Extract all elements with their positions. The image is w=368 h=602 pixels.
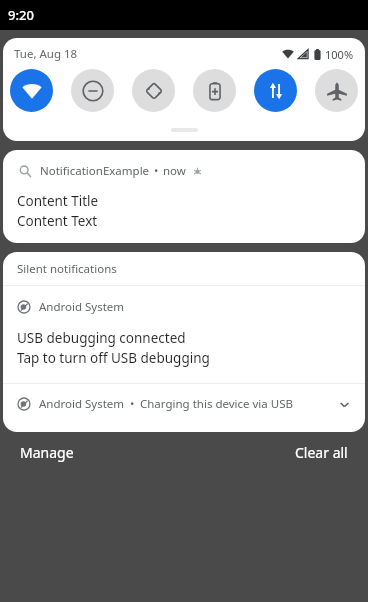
staticText: Clear all xyxy=(295,443,348,462)
button[interactable]: Auto rotate xyxy=(132,69,175,112)
button[interactable]: Mobile data xyxy=(254,69,297,112)
staticText: USB debugging connected xyxy=(17,329,186,347)
button[interactable]: Android System xyxy=(3,286,365,383)
button[interactable]: Airplane mode xyxy=(315,69,358,112)
staticText: NotificationExample xyxy=(40,163,150,179)
button[interactable]: NotificationExample xyxy=(3,150,365,243)
staticText: Android System xyxy=(39,396,125,412)
staticText: • xyxy=(130,396,135,412)
button[interactable]: Android System xyxy=(3,384,365,424)
staticText: Silent notifications xyxy=(17,261,117,277)
button[interactable]: Wi-Fi xyxy=(10,69,53,112)
staticText: Content Title xyxy=(17,192,99,210)
button[interactable]: Do not disturb xyxy=(71,69,114,112)
staticText: Tue, Aug 18 xyxy=(14,46,78,62)
button[interactable]: Battery saver xyxy=(193,69,236,112)
staticText: Content Text xyxy=(17,212,98,230)
staticText: Tap to turn off USB debugging xyxy=(17,349,210,367)
staticText: Android System xyxy=(39,299,125,315)
staticText: 9:20 xyxy=(8,6,34,24)
staticText: 100% xyxy=(325,47,354,62)
button[interactable]: Clear all xyxy=(283,439,368,466)
button[interactable]: Silent notifications xyxy=(3,252,365,285)
staticText: Charging this device via USB xyxy=(140,396,293,412)
staticText: • xyxy=(154,163,159,179)
staticText: Manage xyxy=(20,443,74,462)
staticText: now xyxy=(163,163,186,179)
button[interactable]: Manage xyxy=(0,439,86,466)
